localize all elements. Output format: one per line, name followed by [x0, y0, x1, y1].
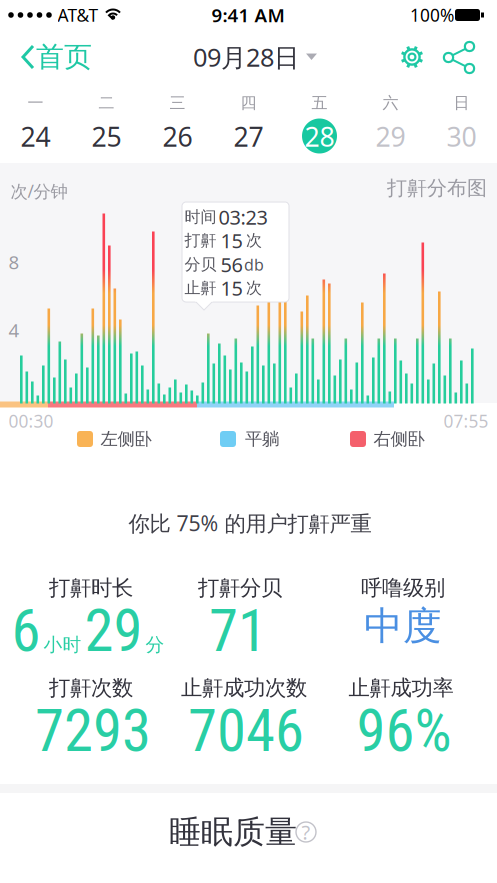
staticText: 时间 — [184, 207, 216, 227]
staticText: 6 — [11, 597, 40, 665]
staticText: 右侧卧 — [373, 428, 424, 450]
staticText: 五 — [311, 93, 327, 113]
staticText: 平躺 — [245, 428, 279, 450]
staticText: 次/分钟 — [10, 179, 67, 202]
staticText: 打鼾次数 — [49, 675, 133, 701]
staticText: 左侧卧 — [100, 428, 151, 450]
button[interactable]: 日 — [426, 83, 497, 159]
button[interactable]: 三 — [142, 83, 213, 159]
staticText: 分贝 — [184, 255, 216, 274]
staticText: 29 — [375, 119, 405, 154]
staticText: 次 — [246, 278, 262, 298]
staticText: 26 — [162, 119, 192, 154]
staticText: 7293 — [35, 697, 151, 765]
staticText: 15 — [220, 227, 242, 254]
staticText: 56 — [220, 251, 242, 278]
button[interactable]: 六 — [355, 83, 426, 159]
staticText: 25 — [91, 119, 121, 154]
staticText: 打鼾 — [184, 231, 216, 250]
staticText: db — [244, 254, 264, 275]
staticText: ? — [301, 819, 310, 845]
button[interactable] — [441, 39, 477, 75]
staticText: 28 — [304, 119, 334, 154]
staticText: 六 — [382, 93, 398, 113]
staticText: 日 — [453, 93, 469, 113]
staticText: 9:41 AM — [211, 3, 284, 27]
staticText: 打鼾分贝 — [198, 575, 282, 601]
staticText: 你比 75% 的用户打鼾严重 — [128, 509, 371, 537]
staticText: 四 — [240, 93, 256, 113]
button[interactable]: 09月28日 — [193, 35, 317, 79]
staticText: 15 — [220, 275, 242, 301]
staticText: 00:30 — [8, 409, 53, 432]
button[interactable] — [394, 39, 430, 75]
staticText: 打鼾分布图 — [387, 176, 487, 200]
staticText: 7046 — [188, 697, 304, 765]
staticText: 4 — [8, 318, 19, 342]
staticText: 三 — [169, 93, 185, 113]
staticText: 30 — [446, 119, 476, 154]
staticText: 分 — [145, 633, 164, 656]
staticText: 一 — [27, 93, 43, 113]
button[interactable]: 首页 — [0, 0, 110, 44]
button[interactable]: 二 — [71, 83, 142, 159]
staticText: 二 — [98, 93, 114, 113]
button[interactable]: 一 — [0, 83, 71, 159]
staticText: 8 — [8, 250, 19, 274]
staticText: 07:55 — [443, 409, 488, 432]
staticText: AT&T — [57, 3, 98, 26]
button[interactable]: ? — [295, 821, 317, 843]
staticText: 次 — [246, 231, 262, 250]
staticText: 29 — [84, 597, 142, 665]
staticText: 打鼾时长 — [49, 575, 133, 601]
staticText: 09月28日 — [193, 40, 299, 74]
button[interactable]: 四 — [213, 83, 284, 159]
staticText: 71 — [209, 597, 267, 665]
button[interactable]: 五 — [284, 83, 355, 159]
staticText: 小时 — [43, 633, 81, 656]
staticText: 睡眠质量 — [169, 812, 297, 852]
staticText: 03:23 — [218, 204, 267, 230]
staticText: 100% — [410, 3, 454, 26]
staticText: 止鼾成功率 — [348, 675, 453, 701]
staticText: 首页 — [36, 40, 92, 74]
staticText: 止鼾成功次数 — [181, 675, 307, 701]
staticText: 27 — [233, 119, 263, 154]
staticText: 24 — [20, 119, 50, 154]
staticText: 中度 — [364, 602, 442, 650]
staticText: 呼噜级别 — [361, 575, 445, 601]
staticText: 止鼾 — [184, 278, 216, 298]
staticText: 96% — [356, 697, 451, 765]
